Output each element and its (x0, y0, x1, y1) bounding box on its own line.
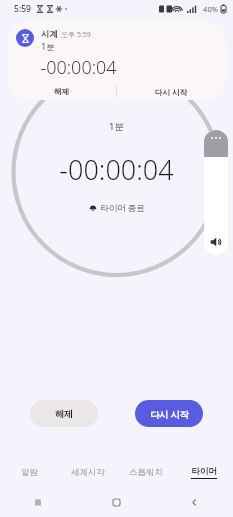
staticText: -00:00:04 (40, 55, 117, 80)
staticText: 1분 (109, 120, 124, 133)
staticText: 해제 (54, 87, 69, 96)
button[interactable]: 다시 시작 (135, 400, 203, 427)
button[interactable]: Back (155, 487, 233, 517)
staticText: 스톱워치 (129, 467, 163, 478)
staticText: 세계시각 (71, 467, 105, 478)
staticText: 알람 (21, 467, 38, 478)
staticText: 다시 시작 (155, 87, 187, 97)
staticText: 오후 5:59 (61, 30, 91, 40)
staticText: 타이머 (191, 466, 217, 477)
button[interactable]: Recents (0, 487, 77, 517)
button[interactable]: Home (77, 487, 155, 517)
staticText: -00:00:04 (59, 151, 174, 188)
staticText: 40% (203, 4, 218, 14)
staticText: 다시 시작 (150, 408, 189, 420)
button[interactable]: 스톱워치 (117, 460, 175, 484)
staticText: 해제 (55, 408, 73, 419)
staticText: 타이머 종료 (100, 202, 145, 214)
staticText: 1분 (41, 41, 55, 53)
button[interactable]: 세계시각 (59, 460, 117, 484)
button[interactable]: Volume (204, 130, 228, 255)
button[interactable]: 알람 (0, 460, 59, 484)
button[interactable]: 해제 (7, 83, 116, 100)
button[interactable]: 다시 시작 (116, 83, 226, 100)
staticText: 시계 (41, 29, 58, 40)
button[interactable]: 시계 (7, 21, 226, 100)
button[interactable]: 타이머 (175, 460, 233, 484)
button[interactable]: 해제 (30, 400, 98, 427)
staticText: 5:59 (14, 3, 31, 15)
